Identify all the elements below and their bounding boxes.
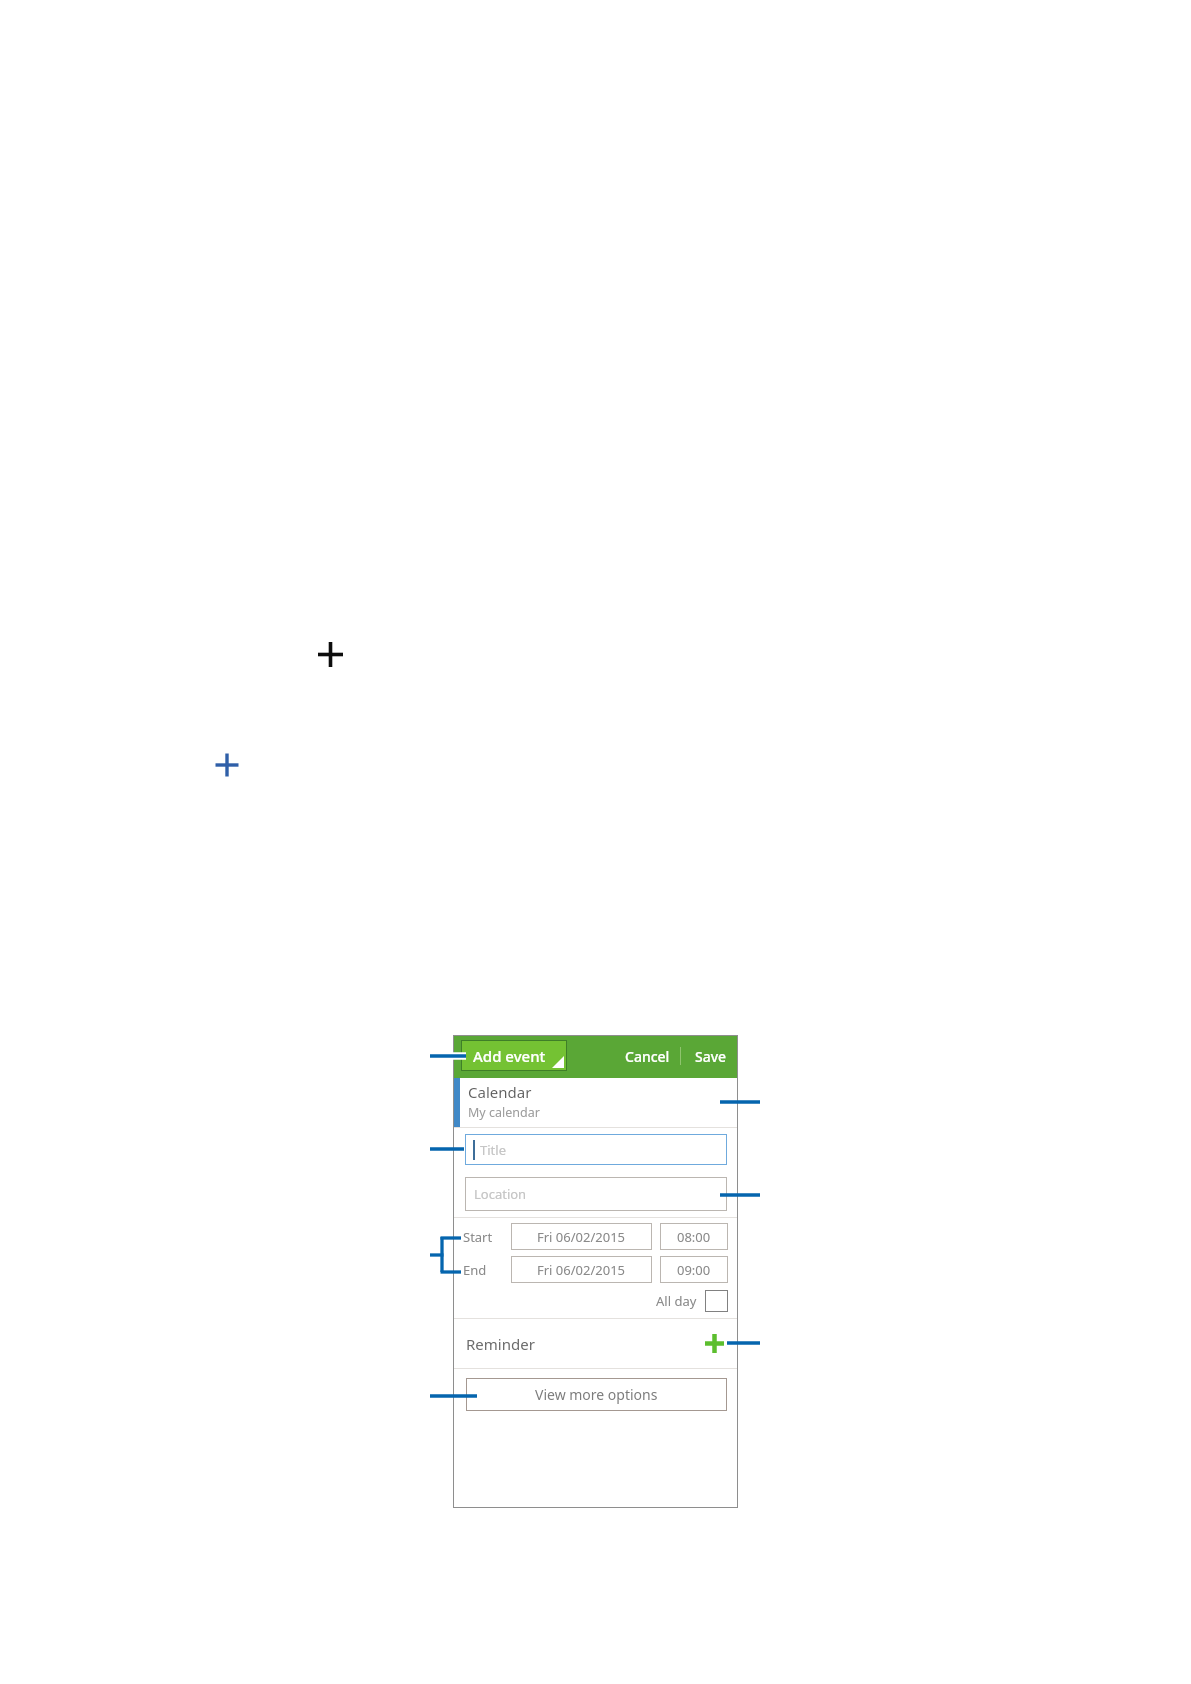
staticText: View more options xyxy=(535,1385,658,1404)
button[interactable]: Location xyxy=(465,1177,727,1211)
staticText: All day xyxy=(656,1292,697,1310)
staticText: 09:00 xyxy=(677,1261,711,1279)
button[interactable]: Fri 06/02/2015 xyxy=(511,1223,652,1250)
staticText: Save xyxy=(695,1047,727,1066)
button[interactable]: Save xyxy=(687,1043,735,1069)
button[interactable]: Calendar xyxy=(453,1078,738,1127)
staticText: Cancel xyxy=(625,1047,670,1066)
button[interactable]: Add event xyxy=(461,1040,567,1071)
staticText: End xyxy=(463,1261,487,1279)
staticText: My calendar xyxy=(468,1104,540,1121)
button[interactable]: All day xyxy=(705,1290,728,1312)
button[interactable]: Title xyxy=(465,1134,727,1165)
button[interactable]: 09:00 xyxy=(660,1256,728,1283)
staticText: Location xyxy=(474,1185,527,1203)
staticText: 08:00 xyxy=(677,1228,711,1246)
button[interactable]: Cancel xyxy=(616,1043,678,1069)
button[interactable]: 08:00 xyxy=(660,1223,728,1250)
staticText: Calendar xyxy=(468,1082,532,1102)
button[interactable]: Fri 06/02/2015 xyxy=(511,1256,652,1283)
staticText: Title xyxy=(480,1141,506,1159)
staticText: Reminder xyxy=(466,1334,535,1354)
staticText: Fri 06/02/2015 xyxy=(537,1228,626,1246)
staticText: Add event xyxy=(473,1046,546,1066)
staticText: Start xyxy=(463,1228,493,1246)
button[interactable]: View more options xyxy=(466,1378,727,1411)
staticText: Fri 06/02/2015 xyxy=(537,1261,626,1279)
button[interactable]: Add reminder xyxy=(701,1330,727,1356)
button[interactable]: Reminder xyxy=(453,1319,738,1368)
